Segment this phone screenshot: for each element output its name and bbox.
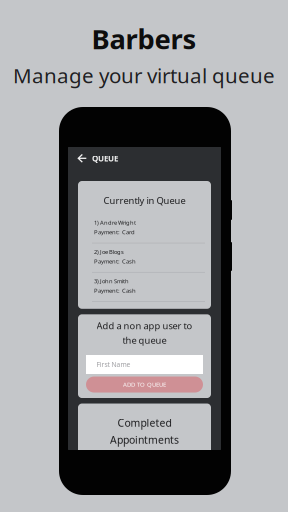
staticText: 2) Joe Blogs	[94, 248, 124, 256]
button[interactable]: Back	[68, 147, 92, 170]
button[interactable]: ADD TO QUEUE	[78, 376, 211, 392]
staticText: ADD TO QUEUE	[123, 380, 166, 389]
staticText: the queue	[122, 334, 166, 346]
staticText: Payment: Card	[94, 228, 135, 236]
staticText: 1) Andre Wright	[94, 219, 136, 226]
staticText: Completed	[117, 415, 171, 430]
staticText: Payment: Cash	[94, 257, 136, 265]
staticText: Barbers	[91, 20, 196, 57]
staticText: First Name	[96, 360, 130, 369]
staticText: Add a non app user to	[96, 319, 192, 332]
staticText: Manage your virtual queue	[13, 61, 275, 89]
staticText: Payment: Cash	[94, 286, 136, 294]
button[interactable]: Completed	[78, 403, 211, 459]
staticText: Currently in Queue	[103, 194, 185, 207]
staticText: QUEUE	[92, 153, 118, 164]
staticText: Appointments	[110, 433, 179, 447]
staticText: 3) John Smith	[94, 277, 129, 285]
